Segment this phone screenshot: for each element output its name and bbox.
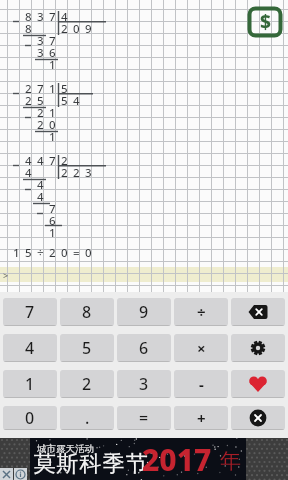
staticText: - — [199, 374, 204, 394]
staticText: 4 — [37, 189, 44, 201]
staticText: 8 — [82, 301, 92, 323]
button[interactable]: + — [174, 406, 228, 430]
button[interactable]: 1 — [3, 370, 57, 398]
staticText: 1 — [25, 373, 35, 395]
staticText: 7 — [49, 33, 56, 45]
button[interactable]: 7 — [3, 298, 57, 326]
staticText: 5 — [25, 245, 32, 257]
staticText: 6 — [49, 45, 56, 57]
staticText: 4 — [37, 153, 44, 165]
button[interactable]: - — [174, 370, 228, 398]
staticText: 2 — [49, 245, 56, 257]
staticText: 5 — [61, 93, 68, 105]
staticText: 3 — [85, 165, 92, 177]
staticText: 1 — [13, 245, 20, 257]
button[interactable]: 5 — [60, 334, 114, 362]
staticText: 4 — [73, 93, 80, 105]
button[interactable]: $ — [248, 7, 282, 37]
staticText: 8 — [25, 21, 32, 33]
staticText: 5 — [82, 337, 92, 359]
button[interactable]: 城市露天活动 — [30, 438, 246, 480]
staticText: 1 — [49, 81, 56, 93]
staticText: 1 — [49, 105, 56, 117]
staticText: 3 — [37, 33, 44, 45]
button[interactable]: × — [174, 334, 228, 362]
staticText: 7 — [49, 153, 56, 165]
staticText: 1 — [49, 225, 56, 237]
staticText: 2 — [61, 21, 68, 33]
button[interactable] — [14, 468, 27, 480]
staticText: 2 — [25, 93, 32, 105]
staticText: 年 — [220, 448, 241, 474]
button[interactable]: 6 — [117, 334, 171, 362]
staticText: 7 — [49, 9, 56, 21]
staticText: = — [139, 407, 149, 429]
button[interactable]: . — [60, 406, 114, 430]
staticText: 2017 — [142, 439, 212, 480]
button[interactable]: 2 — [60, 370, 114, 398]
staticText: 4 — [25, 337, 35, 359]
staticText: 5 — [37, 93, 44, 105]
staticText: 4 — [25, 165, 32, 177]
staticText: 0 — [25, 407, 35, 429]
staticText: + — [197, 408, 206, 428]
staticText: 2 — [37, 117, 44, 129]
staticText: 2 — [82, 373, 92, 395]
button[interactable]: > — [0, 267, 288, 282]
staticText: 莫斯科季节 — [33, 450, 148, 478]
staticText: $ — [260, 9, 271, 35]
staticText: 0 — [85, 245, 92, 257]
staticText: 2 — [37, 105, 44, 117]
staticText: 7 — [49, 201, 56, 213]
button[interactable]: 9 — [117, 298, 171, 326]
button[interactable]: = — [117, 406, 171, 430]
staticText: 6 — [139, 337, 149, 359]
button[interactable] — [231, 370, 285, 398]
staticText: 2 — [61, 165, 68, 177]
button[interactable] — [231, 298, 285, 326]
staticText: = — [73, 245, 80, 257]
staticText: 0 — [49, 117, 56, 129]
button[interactable]: 4 — [3, 334, 57, 362]
staticText: 4 — [25, 153, 32, 165]
button[interactable] — [231, 334, 285, 362]
staticText: 3 — [37, 9, 44, 21]
staticText: 9 — [85, 21, 92, 33]
staticText: 2 — [61, 153, 68, 165]
staticText: 6 — [49, 213, 56, 225]
staticText: 4 — [61, 9, 68, 21]
button[interactable] — [231, 406, 285, 430]
button[interactable]: 0 — [3, 406, 57, 430]
staticText: 4 — [37, 177, 44, 189]
staticText: . — [85, 407, 90, 429]
staticText: 1 — [49, 129, 56, 141]
staticText: 2 — [73, 165, 80, 177]
staticText: 1 — [49, 57, 56, 69]
staticText: 8 — [25, 9, 32, 21]
staticText: × — [197, 338, 206, 358]
staticText: 7 — [37, 81, 44, 93]
staticText: 3 — [37, 45, 44, 57]
staticText: 0 — [73, 21, 80, 33]
staticText: 5 — [61, 81, 68, 93]
staticText: 0 — [61, 245, 68, 257]
staticText: 2 — [25, 81, 32, 93]
staticText: ÷ — [197, 302, 206, 322]
staticText: 9 — [139, 301, 149, 323]
staticText: 城市露天活动 — [37, 443, 94, 455]
button[interactable]: 8 — [60, 298, 114, 326]
button[interactable]: 3 — [117, 370, 171, 398]
button[interactable]: ÷ — [174, 298, 228, 326]
staticText: 3 — [139, 373, 149, 395]
button[interactable] — [0, 468, 13, 480]
staticText: ÷ — [37, 245, 44, 257]
staticText: > — [3, 269, 9, 281]
staticText: 7 — [25, 301, 35, 323]
